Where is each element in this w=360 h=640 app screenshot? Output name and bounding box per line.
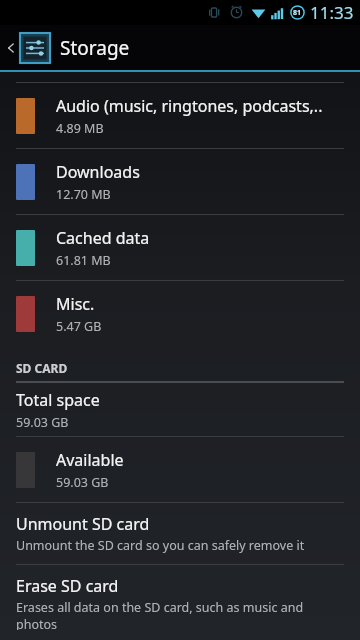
staticText: 81	[293, 8, 302, 18]
staticText: 59.03 GB	[16, 414, 69, 431]
staticText: Storage	[60, 35, 130, 61]
staticText: 4.89 MB	[56, 120, 104, 137]
staticText: Erase SD card	[16, 575, 119, 597]
staticText: Cached data	[56, 227, 150, 249]
staticText: Available	[56, 449, 124, 471]
staticText: Unmount the SD card so you can safely re…	[16, 537, 305, 554]
button[interactable]: Downloads	[0, 149, 360, 214]
other: Settings	[20, 33, 50, 63]
staticText: Audio (music, ringtones, podcasts,..	[56, 95, 323, 117]
button[interactable]: Total space	[0, 383, 360, 436]
staticText: 59.03 GB	[56, 474, 109, 491]
other: Navigate up	[6, 43, 16, 53]
staticText: Downloads	[56, 161, 140, 183]
button[interactable]: Navigate up	[0, 25, 360, 70]
button[interactable]: Cached data	[0, 215, 360, 280]
button[interactable]: Erase SD card	[0, 565, 360, 640]
staticText: Total space	[16, 389, 100, 411]
staticText: 61.81 MB	[56, 252, 111, 269]
staticText: 11:33	[310, 1, 354, 24]
button[interactable]: Audio (music, ringtones, podcasts,..	[0, 83, 360, 148]
staticText: SD CARD	[16, 360, 68, 376]
button[interactable]: Misc.	[0, 281, 360, 346]
staticText: Misc.	[56, 293, 95, 315]
button[interactable]: Available	[0, 437, 360, 502]
staticText: Unmount SD card	[16, 513, 150, 535]
button[interactable]: Unmount SD card	[0, 503, 360, 564]
staticText: 5.47 GB	[56, 318, 102, 335]
staticText: Erases all data on the SD card, such as …	[16, 599, 344, 630]
staticText: 12.70 MB	[56, 186, 111, 203]
